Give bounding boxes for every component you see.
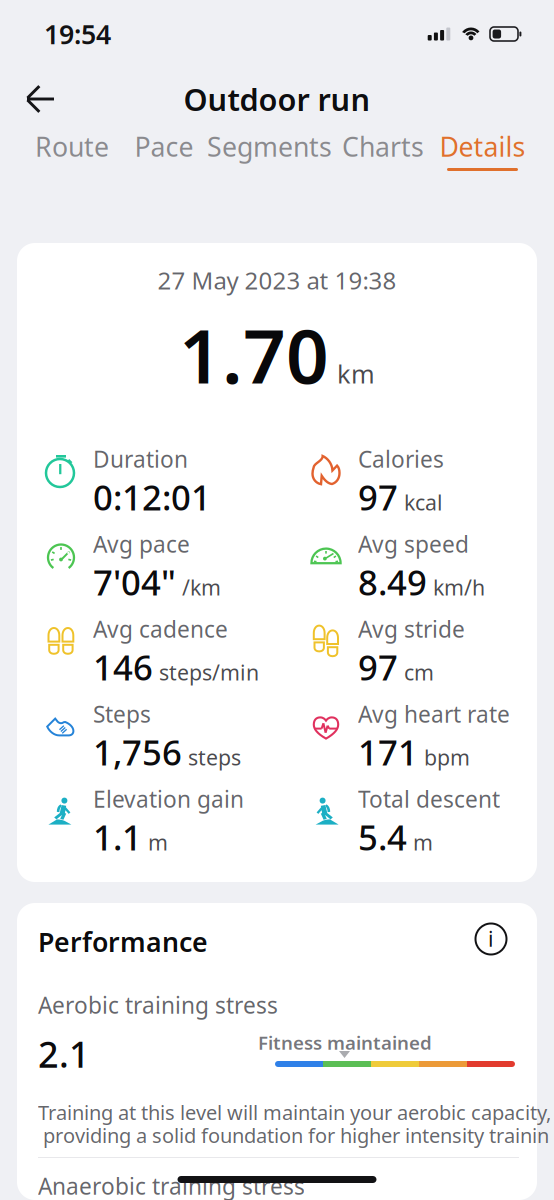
staticText: m [148, 828, 168, 856]
staticText: cm [404, 658, 434, 686]
staticText: Avg speed [358, 529, 469, 559]
staticText: 2.1 [38, 1030, 90, 1078]
staticText: kcal [404, 488, 443, 516]
staticText: Calories [358, 444, 444, 474]
staticText: 1,756 [93, 729, 182, 775]
button[interactable]: Back [14, 76, 66, 122]
button[interactable]: Pace [122, 130, 206, 174]
staticText: Pace [134, 129, 193, 164]
staticText: Avg heart rate [358, 699, 510, 729]
staticText: km [337, 357, 375, 390]
staticText: 5.4 [358, 814, 407, 860]
staticText: bpm [424, 743, 470, 771]
button[interactable]: Route [22, 130, 122, 174]
staticText: Anaerobic training stress [38, 1171, 305, 1200]
staticText: Outdoor run [183, 79, 370, 119]
button[interactable]: Details [433, 130, 532, 174]
staticText: Training at this level will maintain you… [38, 1099, 551, 1126]
button[interactable]: Charts [333, 130, 433, 174]
staticText: Elevation gain [93, 784, 244, 814]
staticText: 19:54 [44, 16, 111, 52]
staticText: 1.70 [179, 305, 329, 404]
staticText: providing a solid foundation for higher … [43, 1122, 549, 1149]
staticText: Charts [342, 129, 424, 164]
staticText: Avg cadence [93, 614, 228, 644]
staticText: km/h [433, 573, 485, 601]
staticText: steps [188, 743, 241, 771]
button[interactable]: Information [469, 917, 513, 961]
staticText: Avg pace [93, 529, 190, 559]
staticText: steps/min [159, 658, 259, 686]
staticText: Total descent [358, 784, 500, 814]
staticText: Duration [93, 444, 188, 474]
staticText: Details [439, 129, 525, 164]
staticText: m [413, 828, 433, 856]
staticText: Segments [207, 129, 332, 164]
staticText: Route [35, 129, 109, 164]
staticText: 146 [93, 644, 153, 690]
staticText: 171 [358, 729, 418, 775]
staticText: Performance [38, 924, 208, 959]
staticText: Fitness maintained [258, 1030, 432, 1055]
button[interactable]: Segments [206, 130, 333, 174]
staticText: Steps [93, 699, 151, 729]
staticText: 97 [358, 644, 398, 690]
staticText: 7'04" [93, 559, 176, 605]
staticText: 27 May 2023 at 19:38 [157, 264, 396, 296]
staticText: i [488, 924, 494, 953]
staticText: 0:12:01 [93, 474, 211, 520]
staticText: 8.49 [358, 559, 427, 605]
staticText: Aerobic training stress [38, 990, 278, 1020]
staticText: 1.1 [93, 814, 142, 860]
staticText: Avg stride [358, 614, 465, 644]
staticText: 97 [358, 474, 398, 520]
staticText: /km [182, 573, 221, 601]
